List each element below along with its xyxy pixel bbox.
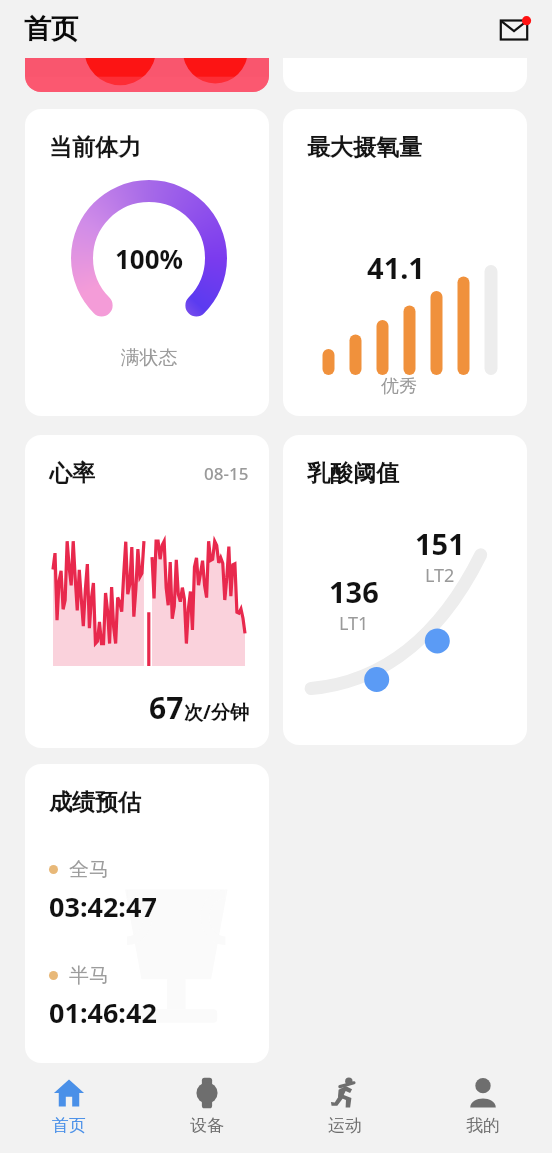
button[interactable]: 我的	[414, 1063, 552, 1153]
staticText: 最大摄氧量	[307, 133, 422, 162]
staticText: 136	[329, 572, 379, 611]
staticText: 我的	[466, 1115, 500, 1136]
staticText: 半马	[69, 963, 109, 988]
staticText: 设备	[190, 1115, 224, 1136]
button[interactable]: Messages	[490, 5, 538, 53]
button[interactable]: 乳酸阈值	[283, 435, 527, 745]
staticText: 满状态	[49, 346, 249, 370]
staticText: 优秀	[307, 375, 491, 398]
button[interactable]: 当前体力	[25, 109, 269, 416]
staticText: 全马	[69, 857, 109, 882]
staticText: 乳酸阈值	[307, 459, 399, 488]
button[interactable]: 设备	[138, 1063, 276, 1153]
staticText: 67	[149, 687, 184, 728]
button[interactable]	[25, 58, 269, 92]
button[interactable]: 心率	[25, 435, 269, 748]
staticText: 首页	[52, 1115, 86, 1136]
staticText: 100%	[115, 241, 184, 276]
staticText: LT2	[425, 563, 455, 588]
staticText: 成绩预估	[49, 788, 141, 817]
button[interactable]: 成绩预估	[25, 764, 269, 1063]
staticText: 08-15	[204, 462, 249, 485]
button[interactable]: 运动	[276, 1063, 414, 1153]
staticText: 运动	[328, 1115, 362, 1136]
staticText: 首页	[24, 12, 78, 46]
staticText: 心率	[49, 459, 95, 488]
button[interactable]: 最大摄氧量	[283, 109, 527, 416]
staticText: 151	[415, 524, 465, 563]
button[interactable]: 首页	[0, 1063, 138, 1153]
staticText: 03:42:47	[49, 888, 157, 925]
staticText: LT1	[339, 611, 369, 636]
staticText: 01:46:42	[49, 994, 157, 1031]
staticText: 当前体力	[49, 133, 141, 162]
staticText: 41.1	[307, 248, 485, 287]
staticText: 次/分钟	[184, 699, 249, 725]
